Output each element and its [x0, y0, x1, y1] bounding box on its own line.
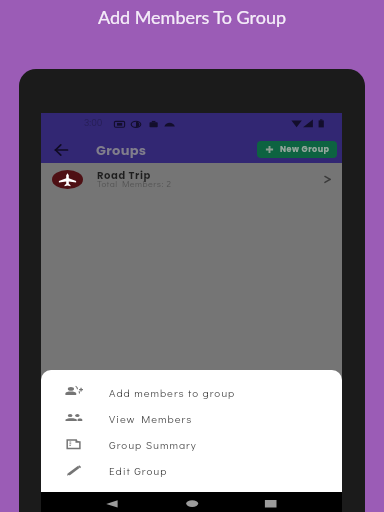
staticText: Edit Group	[109, 463, 168, 477]
button[interactable]: New Group	[257, 141, 337, 158]
button[interactable]: Road Trip	[41, 163, 342, 196]
button[interactable]: Add members to group	[41, 379, 342, 405]
staticText: 3:00	[84, 117, 103, 130]
button[interactable]: View Members	[41, 405, 342, 431]
button[interactable]: Group Summary	[41, 431, 342, 457]
staticText: Add members to group	[109, 385, 236, 399]
staticText: Group Summary	[109, 437, 197, 451]
button[interactable]: Edit Group	[41, 457, 342, 483]
staticText: Total Members: 2	[97, 178, 172, 190]
button[interactable]: Back	[52, 140, 72, 160]
staticText: Road Trip	[97, 168, 151, 182]
staticText: New Group	[280, 144, 330, 155]
staticText: Add Members To Group	[0, 6, 384, 28]
staticText: Groups	[96, 141, 147, 159]
staticText: View Members	[109, 411, 193, 425]
